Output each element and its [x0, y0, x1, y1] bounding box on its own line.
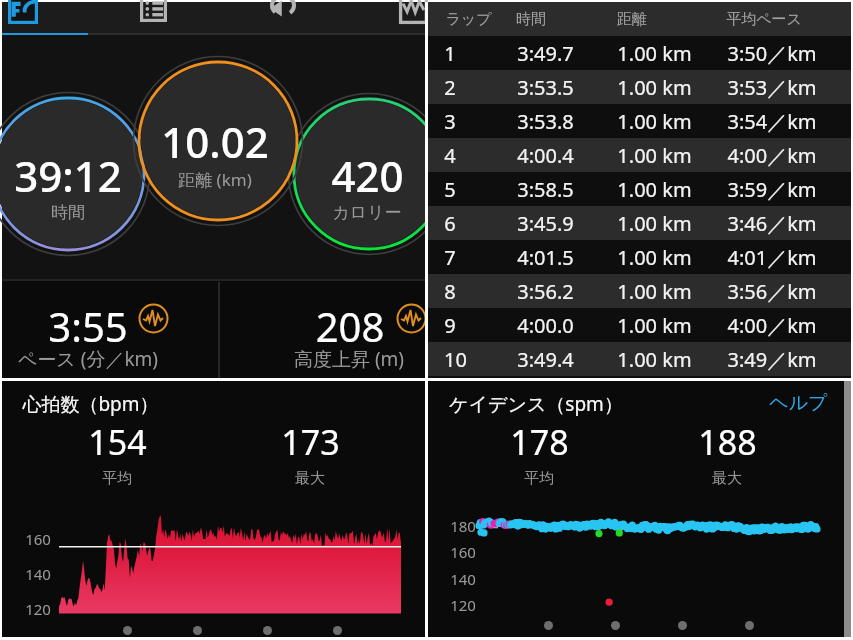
staticText: 10.02 — [161, 113, 269, 170]
staticText: 120 — [450, 595, 476, 615]
staticText: 5 — [444, 176, 456, 203]
staticText: 8 — [444, 278, 456, 305]
staticText: 最大 — [712, 469, 742, 488]
staticText: 3:55 — [18, 299, 158, 353]
button[interactable]: Charts — [387, 2, 442, 33]
staticText: 平均ペース — [726, 10, 802, 29]
staticText: 1.00 km — [617, 176, 692, 203]
staticText: 1.00 km — [617, 346, 692, 373]
staticText: 3:45.9 — [517, 210, 574, 237]
staticText: 10 — [444, 346, 467, 373]
staticText: 160 — [450, 542, 476, 562]
staticText: 心拍数（bpm） — [22, 391, 159, 417]
staticText: 最大 — [295, 469, 325, 488]
staticText: 平均 — [524, 469, 554, 488]
staticText: 3:49.7 — [517, 40, 574, 67]
staticText: 120 — [25, 599, 51, 619]
staticText: 140 — [25, 564, 51, 584]
button[interactable]: 5 — [428, 172, 851, 206]
button[interactable]: 7 — [428, 240, 851, 274]
button[interactable]: Activity — [2, 2, 66, 33]
staticText: 4:00／km — [727, 312, 817, 339]
staticText: 208 — [280, 299, 420, 353]
staticText: 6 — [444, 210, 456, 237]
button[interactable]: 9 — [428, 308, 851, 342]
button[interactable]: 10 — [428, 342, 851, 376]
staticText: 4:00／km — [727, 142, 817, 169]
staticText: 3:56.2 — [517, 278, 574, 305]
staticText: ヘルプ — [769, 391, 828, 415]
staticText: 3:56／km — [727, 278, 817, 305]
staticText: 1.00 km — [617, 40, 692, 67]
staticText: 4:00.0 — [517, 312, 574, 339]
staticText: 1.00 km — [617, 244, 692, 271]
staticText: 7 — [444, 244, 456, 271]
staticText: 9 — [444, 312, 456, 339]
staticText: 160 — [25, 529, 51, 549]
staticText: 180 — [450, 516, 476, 536]
button[interactable]: ヘルプ — [769, 391, 828, 415]
button[interactable]: 2 — [428, 70, 851, 104]
button[interactable]: Laps — [128, 2, 183, 33]
button[interactable]: 3 — [428, 104, 851, 138]
staticText: 1 — [444, 40, 456, 67]
staticText: 4:00.4 — [517, 142, 574, 169]
staticText: 3:49／km — [727, 346, 817, 373]
button[interactable]: 心拍数（bpm） — [2, 381, 425, 637]
staticText: 3 — [444, 108, 456, 135]
staticText: 3:59／km — [727, 176, 817, 203]
staticText: 188 — [698, 419, 757, 465]
staticText: 39:12 — [14, 147, 122, 204]
staticText: 高度上昇 (m) — [259, 346, 439, 372]
staticText: カロリー — [332, 202, 402, 223]
staticText: 1.00 km — [617, 312, 692, 339]
staticText: 4:01.5 — [517, 244, 574, 271]
button[interactable]: 6 — [428, 206, 851, 240]
staticText: ラップ — [445, 10, 492, 29]
button[interactable]: ケイデンス（spm） — [428, 381, 851, 637]
staticText: 3:53.8 — [517, 108, 574, 135]
staticText: 1.00 km — [617, 142, 692, 169]
button[interactable]: 4 — [428, 138, 851, 172]
staticText: 3:53.5 — [517, 74, 574, 101]
staticText: 140 — [450, 569, 476, 589]
button[interactable]: Route — [256, 2, 312, 33]
staticText: 時間 — [516, 10, 546, 29]
staticText: 1.00 km — [617, 108, 692, 135]
staticText: 3:58.5 — [517, 176, 574, 203]
staticText: 3:50／km — [727, 40, 817, 67]
staticText: ケイデンス（spm） — [449, 391, 623, 417]
staticText: 154 — [88, 419, 147, 465]
staticText: 3:53／km — [727, 74, 817, 101]
button[interactable] — [2, 282, 218, 378]
staticText: 3:49.4 — [517, 346, 574, 373]
staticText: 178 — [510, 419, 569, 465]
staticText: 173 — [281, 419, 340, 465]
button[interactable]: 1 — [428, 36, 851, 70]
staticText: 2 — [444, 74, 456, 101]
staticText: 1.00 km — [617, 278, 692, 305]
button[interactable] — [219, 282, 425, 378]
staticText: ペース (分／km) — [0, 346, 178, 372]
staticText: 1.00 km — [617, 210, 692, 237]
staticText: 420 — [331, 147, 404, 204]
staticText: 4 — [444, 142, 456, 169]
staticText: 1.00 km — [617, 74, 692, 101]
staticText: 3:46／km — [727, 210, 817, 237]
staticText: 距離 (km) — [178, 168, 252, 191]
button[interactable]: 8 — [428, 274, 851, 308]
staticText: 距離 — [617, 10, 647, 29]
staticText: 時間 — [51, 202, 85, 223]
staticText: 3:54／km — [727, 108, 817, 135]
staticText: 4:01／km — [727, 244, 817, 271]
staticText: 平均 — [102, 469, 132, 488]
